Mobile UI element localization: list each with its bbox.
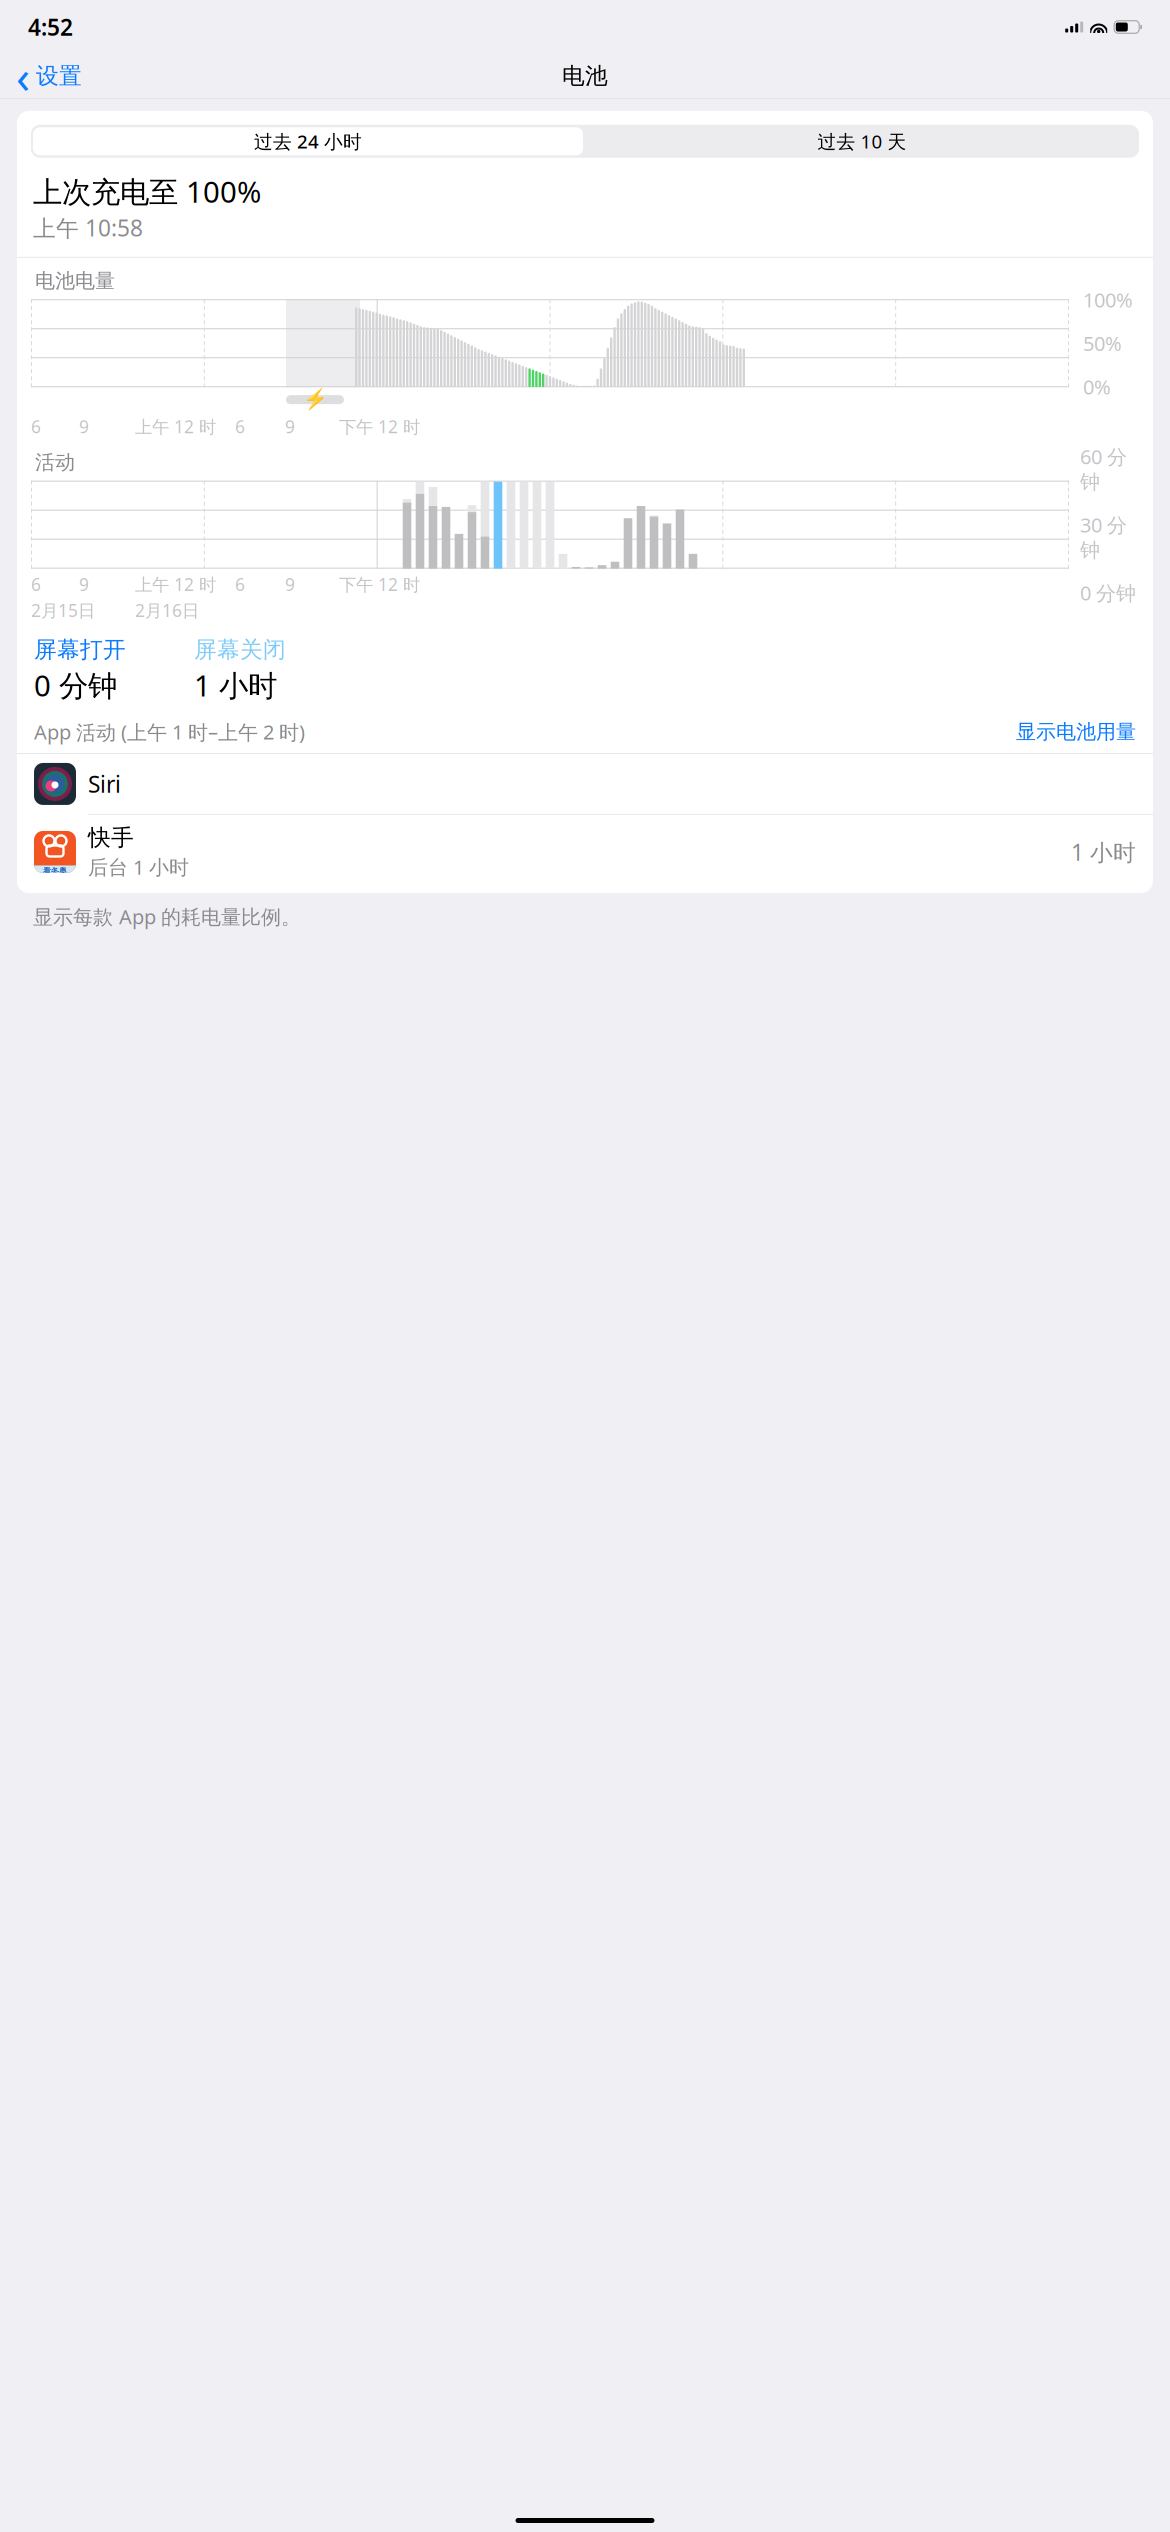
staticText: 0 分钟	[1080, 579, 1136, 606]
staticText: 30 分钟	[1080, 511, 1127, 562]
staticText: 活动	[35, 450, 75, 475]
button[interactable]: 显示电池用量	[1016, 719, 1136, 744]
staticText: 快手	[88, 824, 134, 851]
staticText: 后台 1 小时	[88, 854, 189, 880]
staticText: 下午 12 时	[339, 415, 420, 438]
staticText: 上午 12 时	[135, 573, 216, 596]
staticText: 9	[79, 415, 89, 438]
staticText: 屏幕关闭	[194, 636, 286, 663]
staticText: 9	[79, 573, 89, 596]
button[interactable]: 过去 24 小时	[31, 125, 585, 157]
button[interactable]: ‹	[8, 40, 82, 112]
staticText: 过去 10 天	[817, 129, 906, 154]
staticText: 6	[235, 415, 245, 438]
staticText: 60 分钟	[1080, 443, 1127, 494]
staticText: 上午 10:58	[33, 213, 143, 243]
staticText: 6	[31, 415, 41, 438]
staticText: 过去 24 小时	[254, 129, 362, 154]
staticText: 显示每款 App 的耗电量比例。	[33, 903, 301, 930]
staticText: 2月15日	[31, 599, 95, 622]
staticText: 上午 12 时	[135, 415, 216, 438]
staticText: 4:52	[28, 12, 73, 42]
staticText: 看冬奥	[43, 866, 67, 876]
staticText: 2月16日	[135, 599, 199, 622]
staticText: 电池电量	[35, 269, 115, 293]
staticText: ⚡	[302, 388, 327, 411]
button[interactable]: 过去 10 天	[585, 125, 1139, 157]
staticText: 9	[285, 573, 295, 596]
button[interactable]: 看冬奥	[34, 815, 1136, 889]
staticText: 6	[31, 573, 41, 596]
staticText: 设置	[36, 62, 82, 90]
staticText: 显示电池用量	[1016, 719, 1136, 744]
staticText: 50%	[1083, 330, 1122, 356]
staticText: 100%	[1083, 286, 1133, 313]
staticText: 0%	[1083, 373, 1111, 400]
staticText: 屏幕打开	[34, 636, 126, 663]
staticText: 下午 12 时	[339, 573, 420, 596]
staticText: 上次充电至 100%	[33, 172, 261, 211]
staticText: ‹	[16, 46, 30, 106]
staticText: 1 小时	[194, 665, 277, 704]
staticText: 电池	[562, 62, 608, 90]
staticText: App 活动 (上午 1 时–上午 2 时)	[34, 718, 305, 745]
staticText: Siri	[88, 769, 121, 799]
staticText: 0 分钟	[34, 665, 117, 704]
staticText: 6	[235, 573, 245, 596]
staticText: 9	[285, 415, 295, 438]
staticText: 1 小时	[1071, 837, 1136, 867]
button[interactable]: Siri	[34, 754, 1136, 814]
